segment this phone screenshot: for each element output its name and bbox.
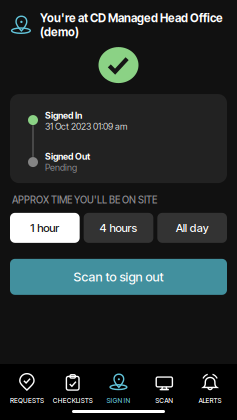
staticText: 31 Oct 2023 01:09 am xyxy=(45,121,127,132)
staticText: ALERTS xyxy=(199,396,222,405)
staticText: Signed In xyxy=(45,110,82,121)
staticText: SCAN xyxy=(155,396,173,405)
button[interactable]: SCAN xyxy=(141,372,187,406)
staticText: CHECKLISTS xyxy=(53,396,93,405)
button[interactable]: 1 hour xyxy=(10,213,80,243)
button[interactable]: Scan to sign out xyxy=(10,259,227,295)
button[interactable]: ALERTS xyxy=(187,372,233,406)
staticText: Scan to sign out xyxy=(73,269,163,284)
button[interactable]: All day xyxy=(157,213,227,243)
staticText: APPROX TIME YOU'LL BE ON SITE xyxy=(12,194,157,206)
staticText: Pending xyxy=(45,162,77,173)
staticText: SIGN IN xyxy=(106,396,130,405)
button[interactable]: SIGN IN xyxy=(96,372,141,406)
staticText: REQUESTS xyxy=(10,396,44,405)
button[interactable]: REQUESTS xyxy=(4,372,50,406)
button[interactable]: 4 hours xyxy=(84,213,153,243)
button[interactable]: CHECKLISTS xyxy=(50,372,96,406)
staticText: 4 hours xyxy=(99,221,137,235)
staticText: Signed Out xyxy=(45,151,90,162)
staticText: All day xyxy=(176,221,209,235)
staticText: 1 hour xyxy=(30,221,59,235)
staticText: You're at CD Managed Head Office (demo) xyxy=(40,11,223,39)
